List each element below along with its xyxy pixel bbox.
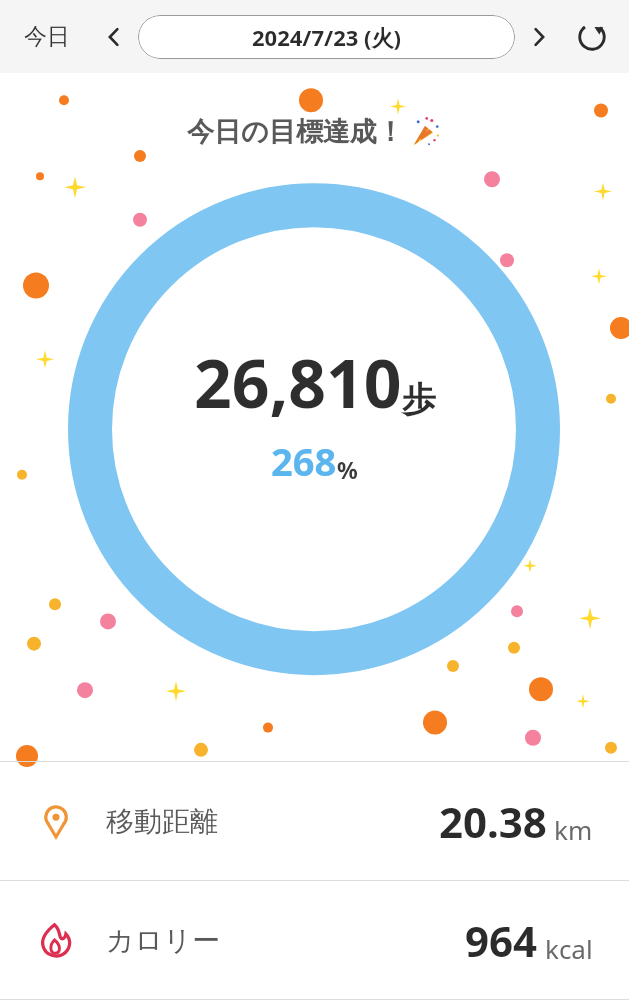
staticText: 268	[271, 435, 337, 487]
staticText: 歩	[402, 378, 436, 421]
staticText: 今日	[24, 22, 70, 51]
staticText: %	[337, 454, 358, 485]
other: Distance	[36, 801, 76, 841]
button[interactable]: Distance	[0, 762, 629, 880]
button[interactable]: Previous day	[94, 17, 134, 57]
staticText: カロリー	[106, 923, 220, 958]
staticText: 今日の目標達成！	[187, 115, 404, 149]
staticText: 移動距離	[106, 804, 218, 839]
staticText: 20.38	[439, 793, 547, 850]
button[interactable]: 今日	[14, 16, 80, 57]
button[interactable]: Calories	[0, 881, 629, 999]
button[interactable]: 2024/7/23 (火)	[138, 15, 515, 59]
staticText: 26,810	[194, 337, 402, 427]
staticText: 964	[465, 912, 538, 969]
staticText: km	[554, 812, 593, 847]
staticText: 2024/7/23 (火)	[252, 22, 401, 52]
staticText: kcal	[545, 931, 593, 966]
button[interactable]: Next day	[519, 17, 559, 57]
button[interactable]: Refresh	[569, 14, 615, 60]
other: Calories	[36, 920, 76, 960]
